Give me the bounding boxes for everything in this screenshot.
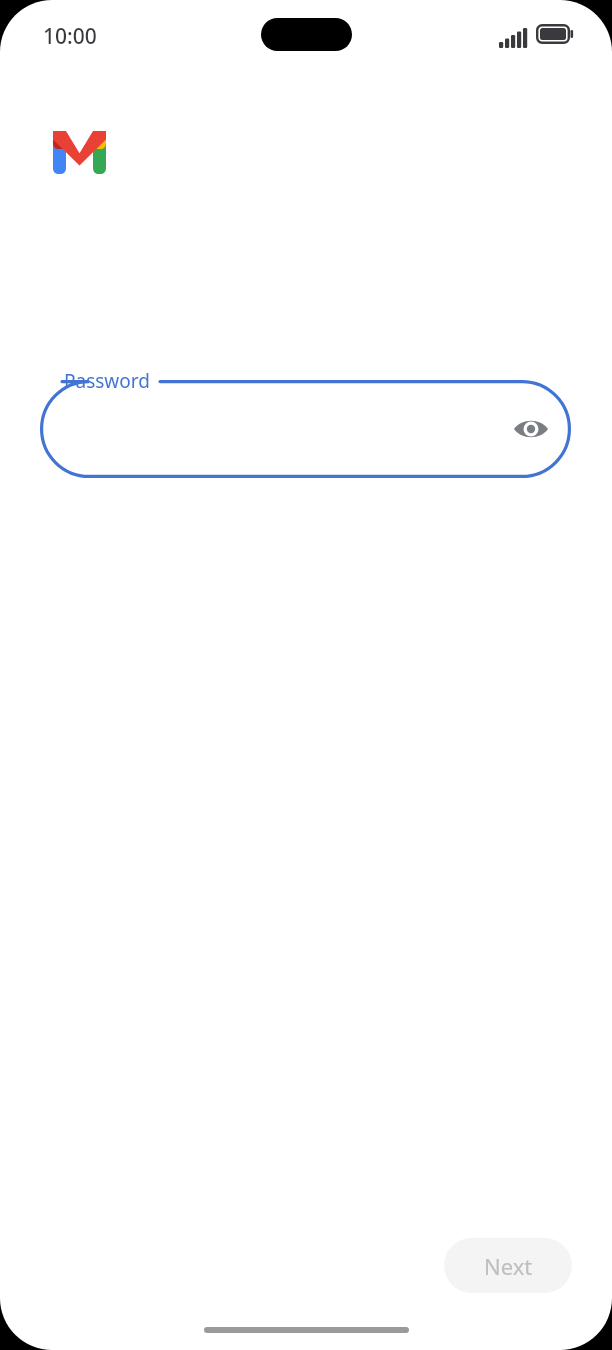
staticText: 10:00: [43, 22, 97, 51]
button[interactable]: Show password: [507, 405, 555, 453]
button[interactable]: Next: [444, 1238, 572, 1293]
button[interactable]: Password: [40, 380, 571, 478]
staticText: Next: [484, 1251, 533, 1281]
staticText: Password: [64, 368, 150, 394]
